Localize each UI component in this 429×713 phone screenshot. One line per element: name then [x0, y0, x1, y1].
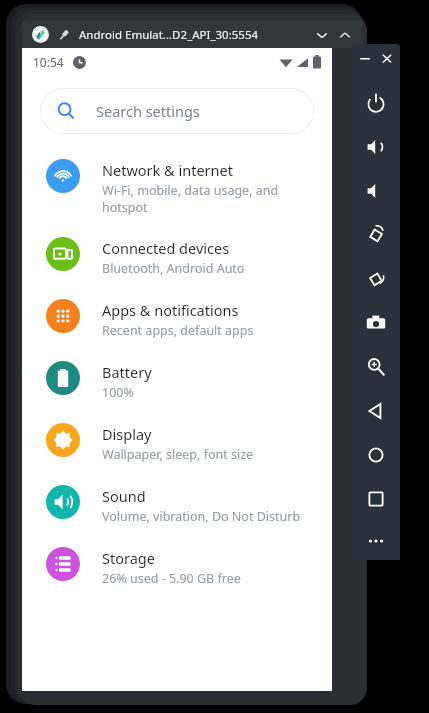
- button[interactable]: Storage: [22, 536, 332, 598]
- other: Pin window: [58, 29, 70, 41]
- staticText: Android Emulat...D2_API_30:5554: [79, 27, 259, 43]
- staticText: Recent apps, default apps: [102, 322, 254, 339]
- staticText: Network & internet: [102, 160, 233, 180]
- button[interactable]: Connected devices: [22, 226, 332, 288]
- button[interactable]: Rotate left: [354, 213, 398, 257]
- button[interactable]: Collapse: [312, 25, 332, 45]
- button[interactable]: Zoom: [354, 345, 398, 389]
- button[interactable]: Close: [379, 50, 395, 66]
- staticText: Wallpaper, sleep, font size: [102, 446, 254, 463]
- staticText: Search settings: [96, 101, 200, 121]
- staticText: Sound: [102, 486, 146, 506]
- button[interactable]: Back: [354, 389, 398, 433]
- button[interactable]: Expand: [335, 25, 355, 45]
- button[interactable]: Take screenshot: [354, 301, 398, 345]
- button[interactable]: More options: [354, 521, 398, 560]
- staticText: 100%: [102, 384, 134, 401]
- button[interactable]: Battery: [22, 350, 332, 412]
- button[interactable]: Minimize: [357, 50, 373, 66]
- button[interactable]: Rotate right: [354, 257, 398, 301]
- staticText: 10:54: [33, 54, 64, 70]
- staticText: Display: [102, 424, 152, 444]
- staticText: Battery: [102, 362, 152, 382]
- staticText: 26% used - 5.90 GB free: [102, 570, 241, 587]
- button[interactable]: Power: [354, 81, 398, 125]
- button[interactable]: Search settings: [40, 88, 314, 134]
- button[interactable]: Network & internet: [22, 153, 332, 226]
- staticText: Connected devices: [102, 238, 230, 258]
- button[interactable]: Volume down: [354, 169, 398, 213]
- button[interactable]: Sound: [22, 474, 332, 536]
- button[interactable]: Volume up: [354, 125, 398, 169]
- staticText: Apps & notifications: [102, 300, 239, 320]
- staticText: Wi-Fi, mobile, data usage, and hotspot: [102, 182, 279, 215]
- staticText: Bluetooth, Android Auto: [102, 260, 245, 277]
- staticText: Storage: [102, 548, 155, 568]
- button[interactable]: Overview: [354, 477, 398, 521]
- button[interactable]: Home: [354, 433, 398, 477]
- staticText: Volume, vibration, Do Not Disturb: [102, 508, 301, 525]
- button[interactable]: Display: [22, 412, 332, 474]
- button[interactable]: Apps & notifications: [22, 288, 332, 350]
